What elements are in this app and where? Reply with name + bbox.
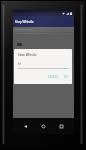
button[interactable]: CANCEL	[47, 74, 60, 80]
button[interactable]: Home	[38, 121, 49, 132]
button[interactable]: Back	[20, 121, 31, 132]
staticText: Stop Whistle	[15, 20, 34, 24]
staticText: CANCEL	[48, 75, 59, 79]
button[interactable]: OK	[63, 74, 69, 80]
staticText: hi	[18, 62, 21, 66]
button[interactable]: Recent apps	[56, 121, 67, 132]
staticText: OK	[64, 75, 68, 79]
staticText: Save Whistle	[18, 53, 37, 57]
